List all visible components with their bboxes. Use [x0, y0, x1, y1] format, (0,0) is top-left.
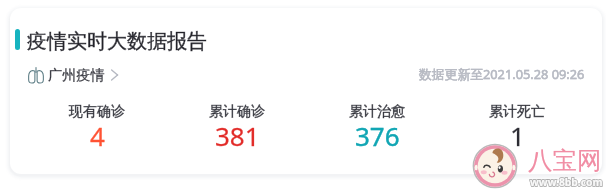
staticText: www.8bb.com: [530, 175, 603, 189]
staticText: 376: [355, 118, 400, 153]
button[interactable]: 现有确诊: [27, 103, 167, 156]
staticText: 累计确诊: [209, 103, 265, 121]
staticText: 疫情实时大数据报告: [27, 29, 207, 54]
staticText: 八宝网: [528, 145, 602, 176]
staticText: 数据更新至2021.05.28 09:26: [419, 65, 585, 82]
staticText: 1: [510, 118, 525, 153]
staticText: 数据更新至2021.05.28 09:26: [419, 65, 585, 82]
staticText: 381: [215, 118, 260, 153]
staticText: 累计死亡: [489, 103, 545, 121]
staticText: 八宝网: [528, 145, 602, 176]
button[interactable]: 累计治愈: [307, 103, 447, 156]
button[interactable]: 累计死亡: [447, 103, 587, 156]
other: 查看详情: [110, 69, 119, 81]
button[interactable]: 疫情: [28, 66, 119, 84]
staticText: 累计确诊: [209, 103, 265, 121]
staticText: 381: [215, 118, 260, 153]
other: 八宝网 www.8bb.com: [470, 143, 606, 192]
staticText: 累计治愈: [349, 103, 405, 121]
other: 疫情: [28, 67, 44, 83]
staticText: 1: [510, 118, 525, 153]
staticText: 现有确诊: [69, 103, 125, 121]
button[interactable]: 累计确诊: [167, 103, 307, 156]
staticText: 广州疫情: [48, 66, 105, 84]
staticText: 4: [90, 118, 105, 153]
staticText: 累计治愈: [349, 103, 405, 121]
staticText: 累计死亡: [489, 103, 545, 121]
staticText: 现有确诊: [69, 103, 125, 121]
staticText: 4: [90, 118, 105, 153]
staticText: www.8bb.com: [530, 175, 603, 189]
staticText: 广州疫情: [48, 66, 105, 84]
staticText: 疫情实时大数据报告: [27, 29, 207, 54]
staticText: 376: [355, 118, 400, 153]
